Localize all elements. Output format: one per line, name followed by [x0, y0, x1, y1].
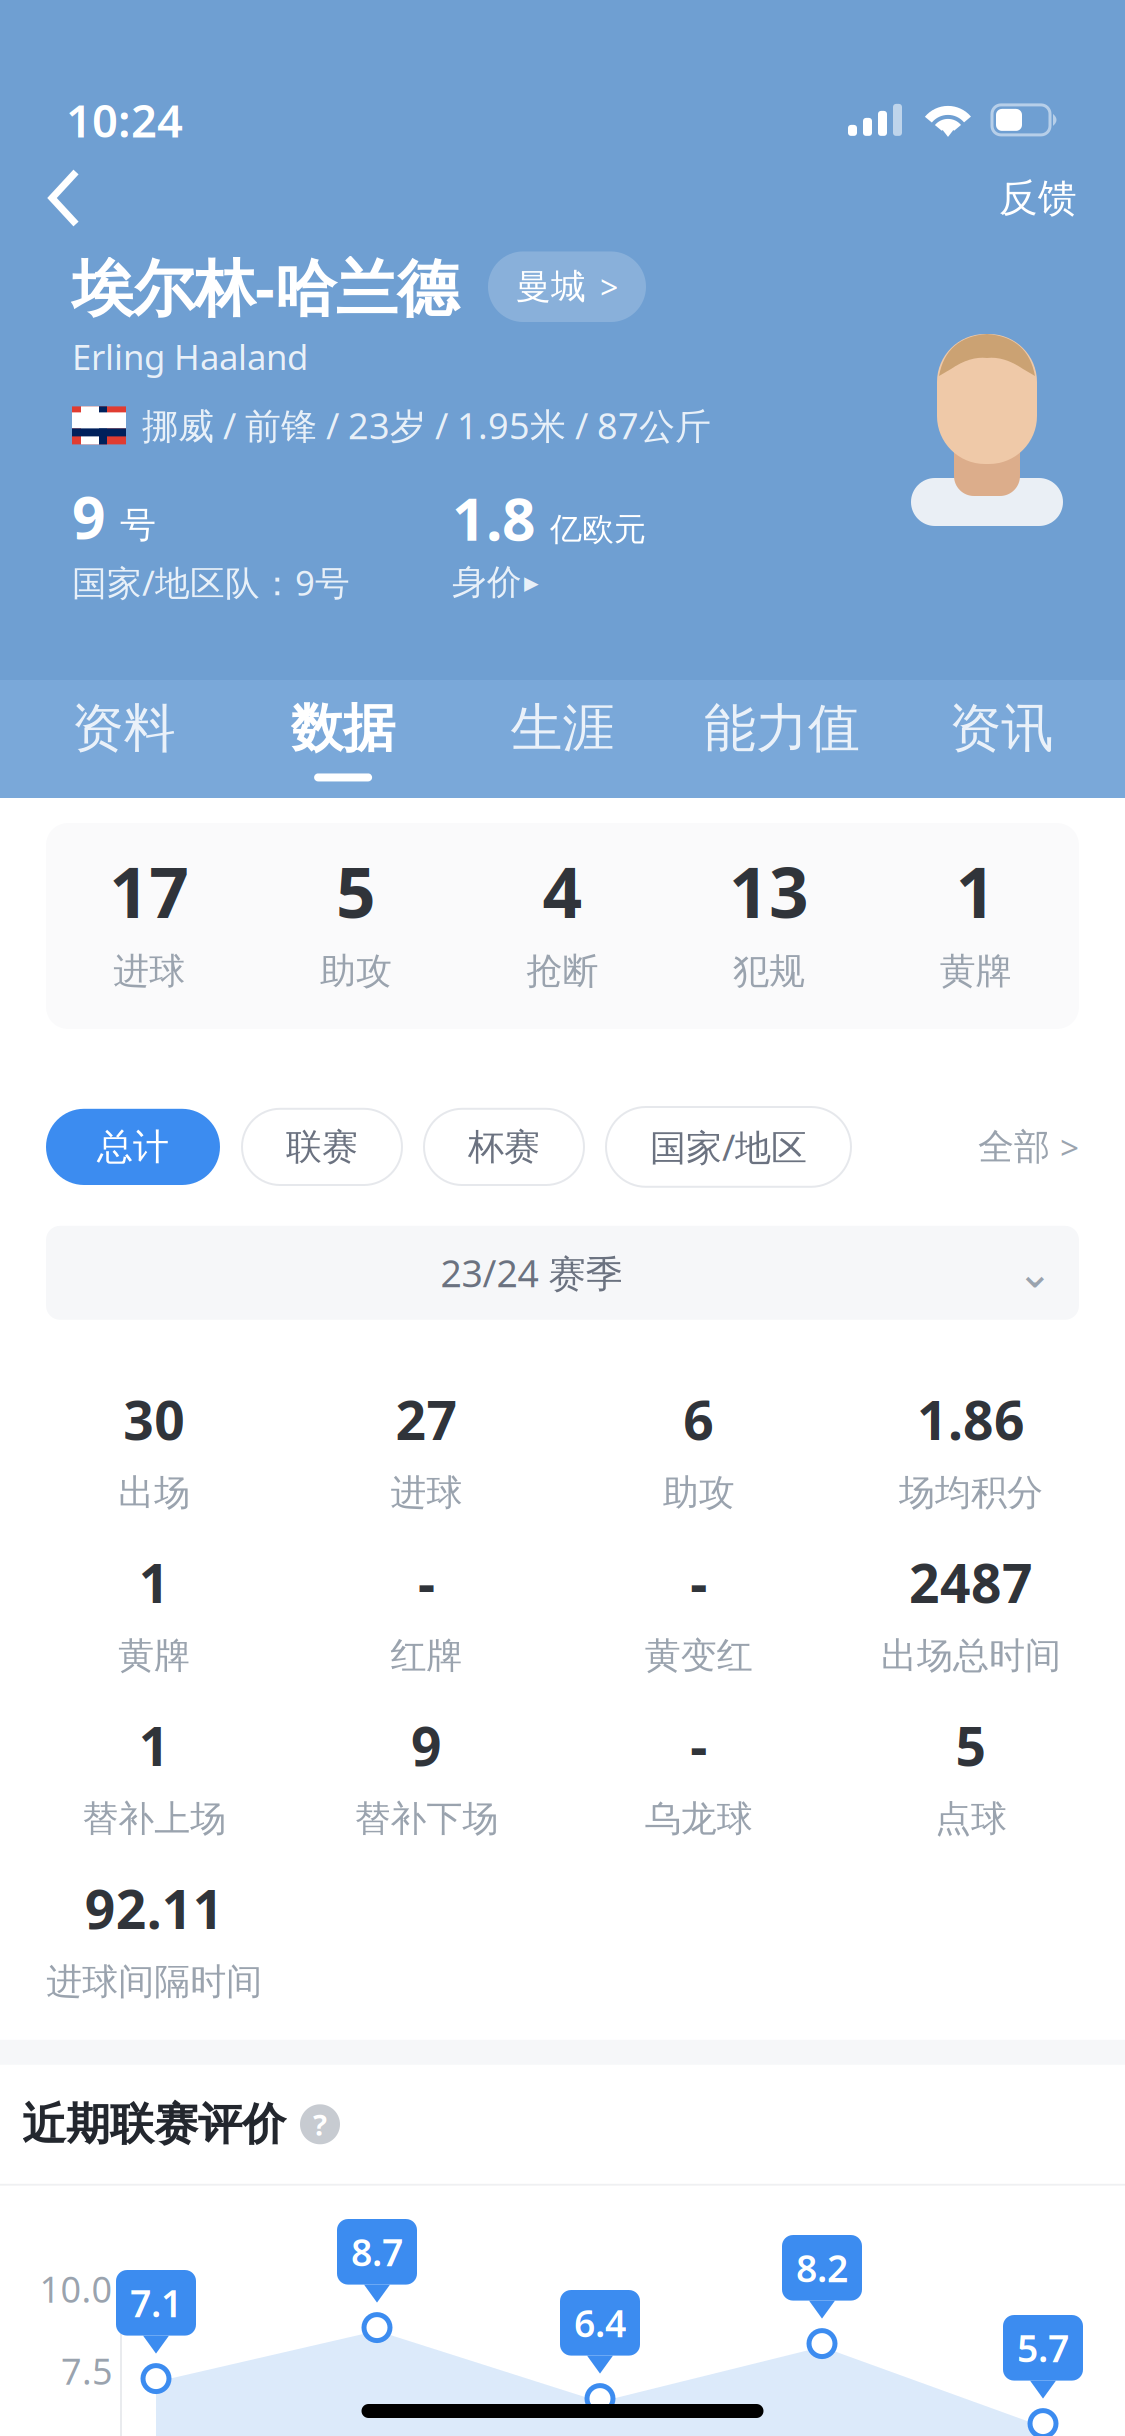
- staticText: 埃尔林-哈兰德: [72, 246, 458, 327]
- staticText: 进球: [390, 1471, 462, 1515]
- staticText: 2487: [909, 1547, 1033, 1618]
- staticText: 场均积分: [899, 1471, 1043, 1515]
- staticText: >: [1060, 1125, 1079, 1169]
- staticText: 国家/地区: [650, 1123, 807, 1171]
- staticText: 5: [955, 1710, 986, 1781]
- staticText: 近期联赛评价: [22, 2097, 286, 2151]
- staticText: 抢断: [526, 949, 598, 993]
- staticText: 出场: [118, 1471, 190, 1515]
- staticText: 1.86: [917, 1384, 1025, 1455]
- staticText: 7.1: [130, 2278, 182, 2328]
- button[interactable]: 反馈: [971, 149, 1105, 247]
- staticText: 10:24: [66, 90, 183, 150]
- staticText: 进球间隔时间: [46, 1960, 262, 2004]
- staticText: 6: [683, 1384, 714, 1455]
- button[interactable]: 国家/地区: [606, 1107, 851, 1187]
- staticText: 30: [123, 1384, 185, 1455]
- staticText: 替补下场: [354, 1797, 498, 1841]
- button[interactable]: 23/24 赛季: [46, 1226, 1079, 1320]
- staticText: 挪威 / 前锋 / 23岁 / 1.95米 / 87公斤: [142, 401, 711, 449]
- staticText: 6.4: [574, 2298, 626, 2348]
- staticText: 乌龙球: [645, 1797, 753, 1841]
- button[interactable]: 数据: [233, 685, 453, 793]
- staticText: 7.5: [61, 2347, 113, 2395]
- staticText: 杯赛: [468, 1125, 540, 1169]
- staticText: 黄牌: [940, 949, 1012, 993]
- staticText: 红牌: [390, 1634, 462, 1678]
- staticText: 9: [411, 1710, 442, 1781]
- staticText: 总计: [97, 1125, 169, 1169]
- staticText: >: [600, 265, 618, 308]
- button[interactable]: 曼城: [488, 251, 646, 322]
- button[interactable]: 返回: [20, 146, 108, 250]
- staticText: -: [690, 1547, 707, 1618]
- staticText: ▸: [524, 566, 539, 599]
- staticText: 资讯: [949, 697, 1053, 760]
- button[interactable]: 全部: [978, 1125, 1079, 1169]
- staticText: 92.11: [85, 1873, 224, 1944]
- staticText: 助攻: [663, 1471, 735, 1515]
- staticText: 9: [72, 477, 106, 555]
- staticText: 1.8: [452, 479, 536, 557]
- staticText: 身价: [452, 561, 522, 603]
- staticText: 数据: [291, 697, 395, 760]
- staticText: 13: [729, 845, 809, 937]
- staticText: 曼城: [516, 265, 586, 308]
- staticText: ⌄: [1017, 1249, 1053, 1297]
- button[interactable]: 联赛: [242, 1109, 402, 1185]
- staticText: 能力值: [704, 697, 860, 760]
- staticText: 助攻: [320, 949, 392, 993]
- button[interactable]: 能力值: [672, 685, 892, 793]
- staticText: 出场总时间: [881, 1634, 1061, 1678]
- staticText: -: [418, 1547, 435, 1618]
- staticText: 反馈: [999, 174, 1077, 222]
- staticText: 黄变红: [645, 1634, 753, 1678]
- staticText: 27: [395, 1384, 457, 1455]
- staticText: 17: [109, 845, 189, 937]
- staticText: 1: [956, 845, 996, 937]
- staticText: 号: [120, 503, 156, 547]
- staticText: 1: [139, 1547, 170, 1618]
- staticText: 点球: [935, 1797, 1007, 1841]
- staticText: 亿欧元: [550, 510, 646, 549]
- staticText: 进球: [113, 949, 185, 993]
- button[interactable]: 说明: [300, 2104, 340, 2144]
- staticText: 5: [336, 845, 376, 937]
- staticText: 生涯: [510, 697, 614, 760]
- staticText: 8.7: [351, 2227, 403, 2277]
- staticText: 8.2: [796, 2243, 848, 2293]
- staticText: 替补上场: [82, 1797, 226, 1841]
- staticText: -: [690, 1710, 707, 1781]
- staticText: 国家/地区队：9号: [72, 559, 350, 605]
- staticText: 4: [542, 845, 582, 937]
- button[interactable]: 生涯: [453, 685, 672, 793]
- button[interactable]: 杯赛: [424, 1109, 584, 1185]
- button[interactable]: 资料: [14, 685, 233, 793]
- staticText: 10.0: [39, 2265, 112, 2313]
- staticText: Erling Haaland: [72, 333, 308, 379]
- staticText: 全部: [978, 1125, 1050, 1169]
- staticText: 1: [139, 1710, 170, 1781]
- staticText: 资料: [72, 697, 176, 760]
- staticText: ?: [313, 2105, 327, 2144]
- staticText: 23/24 赛季: [440, 1248, 622, 1298]
- staticText: 5.7: [1017, 2323, 1069, 2373]
- staticText: 黄牌: [118, 1634, 190, 1678]
- button[interactable]: 资讯: [892, 685, 1111, 793]
- staticText: 犯规: [733, 949, 805, 993]
- button[interactable]: 总计: [46, 1109, 220, 1185]
- staticText: 联赛: [286, 1125, 358, 1169]
